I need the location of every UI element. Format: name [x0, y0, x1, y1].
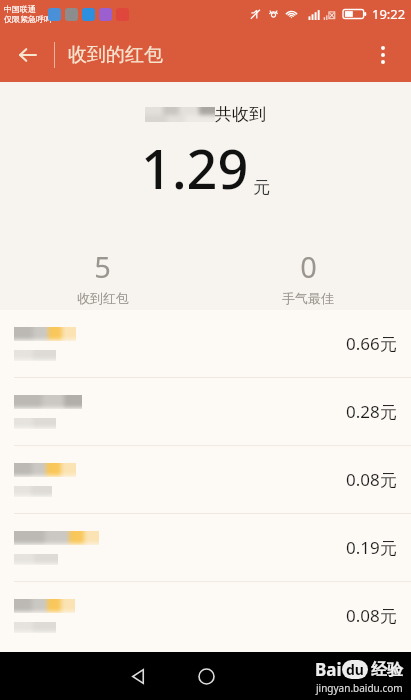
- button[interactable]: More options: [361, 33, 405, 77]
- staticText: 0: [300, 247, 317, 286]
- staticText: 0.28元: [346, 400, 397, 423]
- staticText: 经验: [371, 660, 403, 680]
- staticText: 19:22: [372, 5, 406, 23]
- staticText: 收到的红包: [68, 43, 163, 67]
- staticText: 5: [94, 247, 111, 286]
- button[interactable]: Back: [6, 33, 50, 77]
- staticText: 仅限紧急呼叫: [4, 14, 52, 24]
- staticText: du: [346, 660, 364, 679]
- staticText: 1.29: [141, 131, 249, 205]
- staticText: 收到红包: [77, 290, 129, 306]
- staticText: 手气最佳: [282, 290, 334, 306]
- button[interactable]: Home: [184, 654, 228, 698]
- staticText: 0.19元: [346, 536, 397, 559]
- button[interactable]: 0.19元: [0, 514, 411, 581]
- button[interactable]: 0.66元: [0, 310, 411, 377]
- button[interactable]: Back: [116, 654, 160, 698]
- staticText: 元: [253, 177, 270, 198]
- button[interactable]: 0.28元: [0, 378, 411, 445]
- staticText: jingyan.baidu.com: [316, 681, 403, 695]
- staticText: Bai: [315, 658, 342, 681]
- staticText: 0.66元: [346, 332, 397, 355]
- button[interactable]: 0.08元: [0, 582, 411, 649]
- button[interactable]: 0.08元: [0, 446, 411, 513]
- staticText: 共收到: [215, 104, 266, 125]
- staticText: 中国联通: [4, 4, 36, 14]
- staticText: 0.08元: [346, 604, 397, 627]
- staticText: 0.08元: [346, 468, 397, 491]
